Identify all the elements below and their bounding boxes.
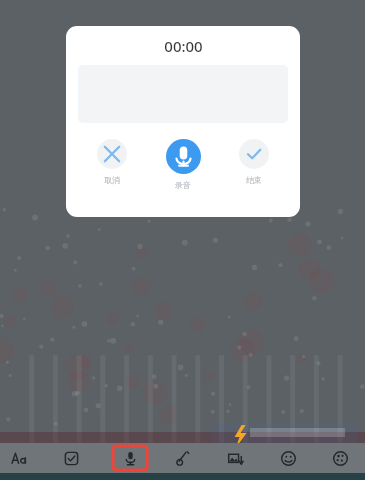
button[interactable]: 取消	[86, 139, 138, 185]
button[interactable]: 录音	[157, 139, 209, 190]
button[interactable]: 结束	[228, 139, 280, 185]
button[interactable]: Checklist	[54, 446, 88, 470]
button[interactable]: Theme	[323, 446, 357, 470]
button[interactable]: Emoji	[271, 446, 305, 470]
staticText: 结束	[246, 175, 262, 185]
staticText: 录音	[175, 180, 191, 190]
button[interactable]: Font size	[2, 446, 36, 470]
button[interactable]: Voice record	[113, 446, 147, 470]
button[interactable]: Insert image	[218, 446, 252, 470]
button[interactable]: Draw	[165, 446, 199, 470]
staticText: 取消	[104, 175, 120, 185]
staticText: 00:00	[164, 36, 203, 56]
